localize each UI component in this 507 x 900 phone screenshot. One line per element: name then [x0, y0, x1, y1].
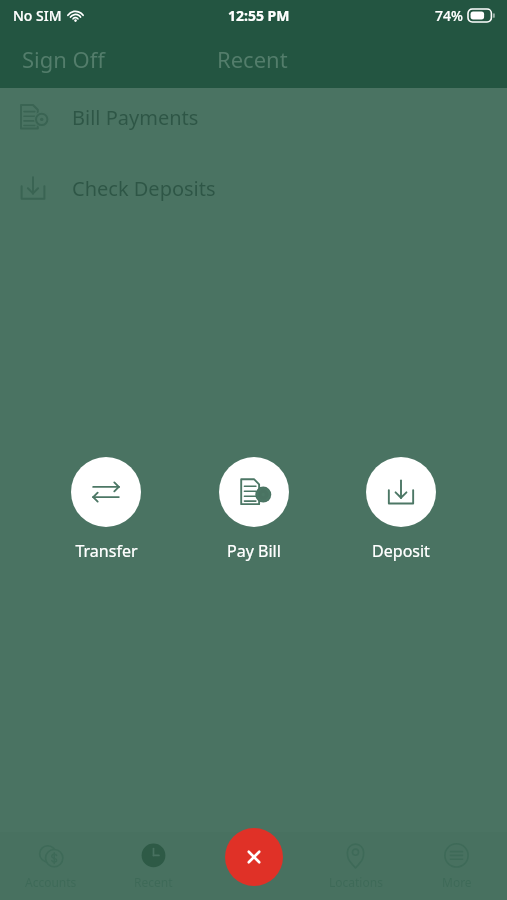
- staticText: Transfer: [75, 540, 138, 562]
- button[interactable]: Pay Bill: [213, 457, 295, 562]
- staticText: Deposit: [372, 540, 430, 562]
- staticText: Sign Off: [22, 44, 105, 74]
- staticText: Recent: [217, 44, 288, 74]
- button[interactable]: Recent: [102, 832, 204, 900]
- button[interactable]: Check Deposits: [0, 165, 507, 211]
- button[interactable]: Transfer: [65, 457, 147, 562]
- staticText: Pay Bill: [227, 540, 281, 562]
- button[interactable]: Close menu: [225, 828, 283, 886]
- staticText: No SIM: [13, 6, 62, 25]
- button[interactable]: Bill Payments: [0, 94, 507, 140]
- staticText: Recent: [134, 874, 173, 890]
- button[interactable]: Deposit: [360, 457, 442, 562]
- button[interactable]: Sign Off: [10, 38, 117, 80]
- staticText: Check Deposits: [72, 175, 216, 202]
- staticText: 74%: [435, 6, 463, 25]
- staticText: More: [442, 874, 472, 890]
- staticText: Bill Payments: [72, 104, 199, 131]
- staticText: Locations: [329, 874, 383, 890]
- staticText: 12:55 PM: [228, 6, 290, 25]
